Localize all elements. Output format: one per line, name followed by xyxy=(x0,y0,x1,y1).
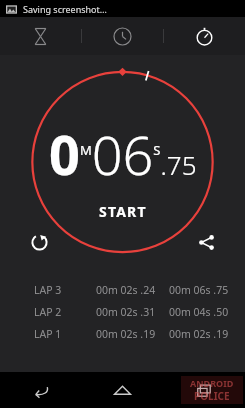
button[interactable]: START xyxy=(75,195,171,228)
staticText: ANDROID xyxy=(190,377,234,389)
staticText: 00m 02s .19 xyxy=(96,327,156,341)
staticText: POLICE xyxy=(194,389,230,403)
staticText: LAP 3 xyxy=(34,283,62,297)
staticText: 0M06S.75 xyxy=(49,117,197,191)
staticText: 00m 04s .50 xyxy=(169,305,229,319)
button[interactable]: Share xyxy=(189,225,223,259)
button[interactable]: Stopwatch xyxy=(164,17,245,55)
staticText: 00m 02s .24 xyxy=(96,283,156,297)
button[interactable]: LAP 3 xyxy=(0,279,245,301)
button[interactable]: Reset xyxy=(22,225,56,259)
button[interactable]: Clock xyxy=(82,17,163,55)
button[interactable]: LAP 2 xyxy=(0,301,245,323)
button[interactable]: Home xyxy=(81,372,163,408)
staticText: LAP 1 xyxy=(34,327,62,341)
staticText: 00m 06s .75 xyxy=(169,283,229,297)
staticText: LAP 2 xyxy=(34,305,62,319)
button[interactable]: Back xyxy=(0,372,81,408)
staticText: Saving screenshot… xyxy=(23,3,107,15)
staticText: 00m 02s .19 xyxy=(169,327,229,341)
staticText: 00m 02s .31 xyxy=(96,305,156,319)
button[interactable]: Recent apps xyxy=(163,372,245,408)
button[interactable]: LAP 1 xyxy=(0,323,245,345)
staticText: START xyxy=(99,202,147,221)
button[interactable]: Timer xyxy=(0,17,81,55)
